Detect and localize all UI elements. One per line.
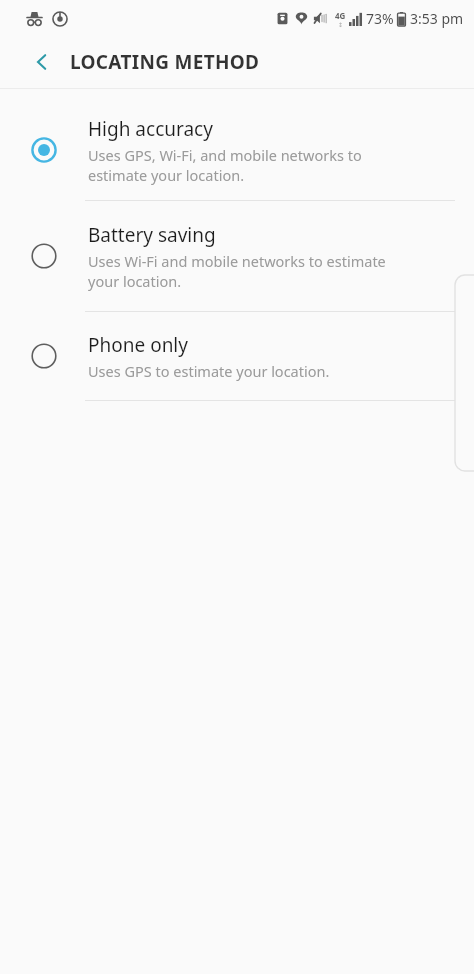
- staticText: 3:53 pm: [410, 9, 464, 28]
- staticText: High accuracy: [88, 116, 213, 142]
- staticText: Battery saving: [88, 222, 216, 248]
- staticText: Uses GPS to estimate your location.: [88, 361, 330, 381]
- button[interactable]: Phone only: [0, 312, 474, 400]
- staticText: 4G: [335, 10, 346, 21]
- button[interactable]: Battery saving: [0, 201, 474, 311]
- staticText: LOCATING METHOD: [70, 49, 260, 75]
- staticText: Phone only: [88, 332, 188, 358]
- button[interactable]: High accuracy: [0, 100, 474, 200]
- staticText: 73%: [366, 9, 394, 28]
- staticText: ↕: [338, 21, 344, 28]
- staticText: Uses GPS, Wi-Fi, and mobile networks to …: [88, 145, 362, 185]
- button[interactable]: Back: [24, 44, 60, 80]
- staticText: Uses Wi-Fi and mobile networks to estima…: [88, 251, 386, 291]
